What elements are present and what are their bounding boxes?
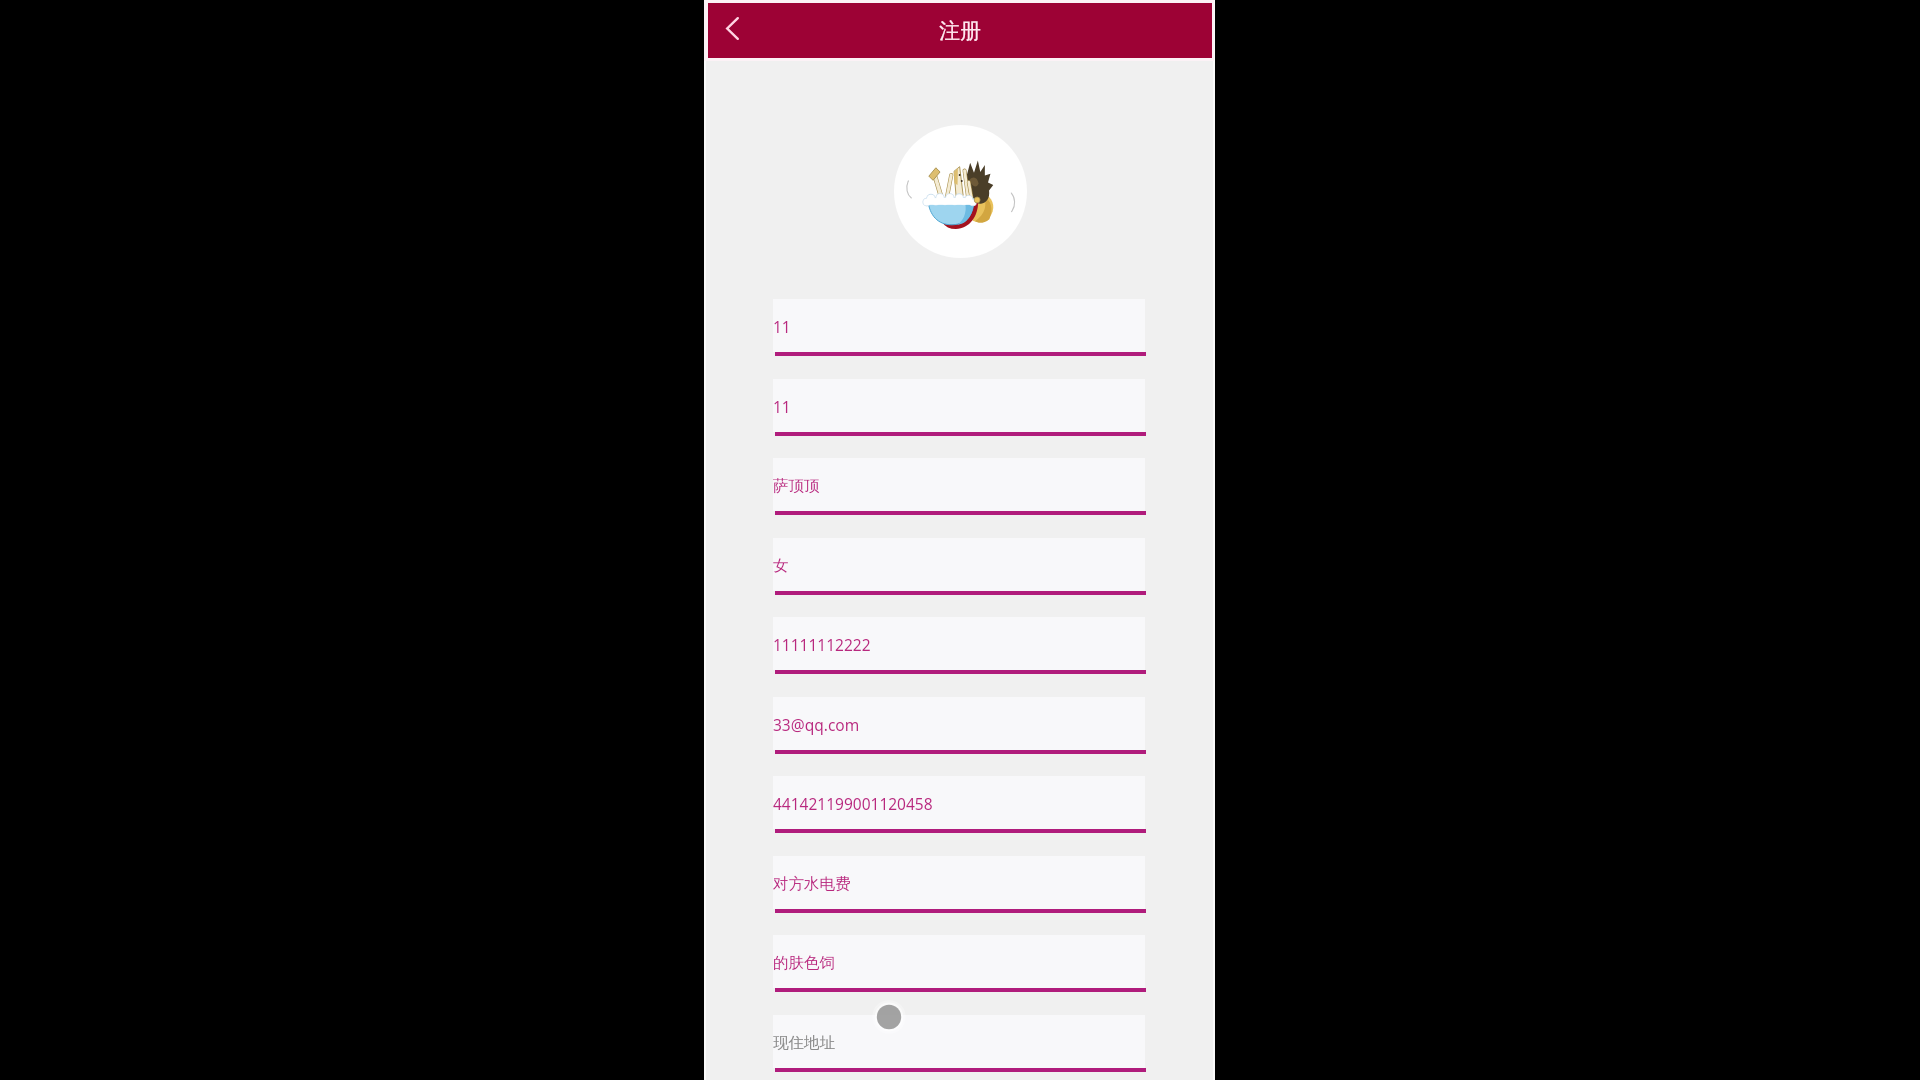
staticText: 注册 — [939, 18, 981, 44]
staticText: 对方水电费 — [773, 874, 851, 894]
staticText: 11 — [773, 316, 791, 337]
button[interactable]: 女 — [773, 538, 1145, 595]
staticText: 33@qq.com — [773, 714, 860, 735]
button[interactable]: 现住地址 — [773, 1015, 1145, 1072]
button[interactable]: 萨顶顶 — [773, 458, 1145, 515]
staticText: 11 — [773, 396, 791, 417]
button[interactable]: Back — [708, 3, 764, 58]
staticText: 女 — [773, 556, 789, 576]
button[interactable]: 的肤色饲 — [773, 935, 1145, 992]
button[interactable]: 441421199001120458 — [773, 776, 1145, 833]
staticText: 萨顶顶 — [773, 476, 820, 496]
staticText: 11111112222 — [773, 634, 871, 655]
button[interactable]: Choose avatar — [894, 125, 1027, 258]
staticText: 现住地址 — [773, 1033, 835, 1053]
button[interactable]: 33@qq.com — [773, 697, 1145, 754]
button[interactable]: 11111112222 — [773, 617, 1145, 674]
button[interactable]: 对方水电费 — [773, 856, 1145, 913]
staticText: 的肤色饲 — [773, 953, 835, 973]
button[interactable]: 11 — [773, 379, 1145, 436]
staticText: 441421199001120458 — [773, 793, 933, 814]
button[interactable]: 11 — [773, 299, 1145, 356]
